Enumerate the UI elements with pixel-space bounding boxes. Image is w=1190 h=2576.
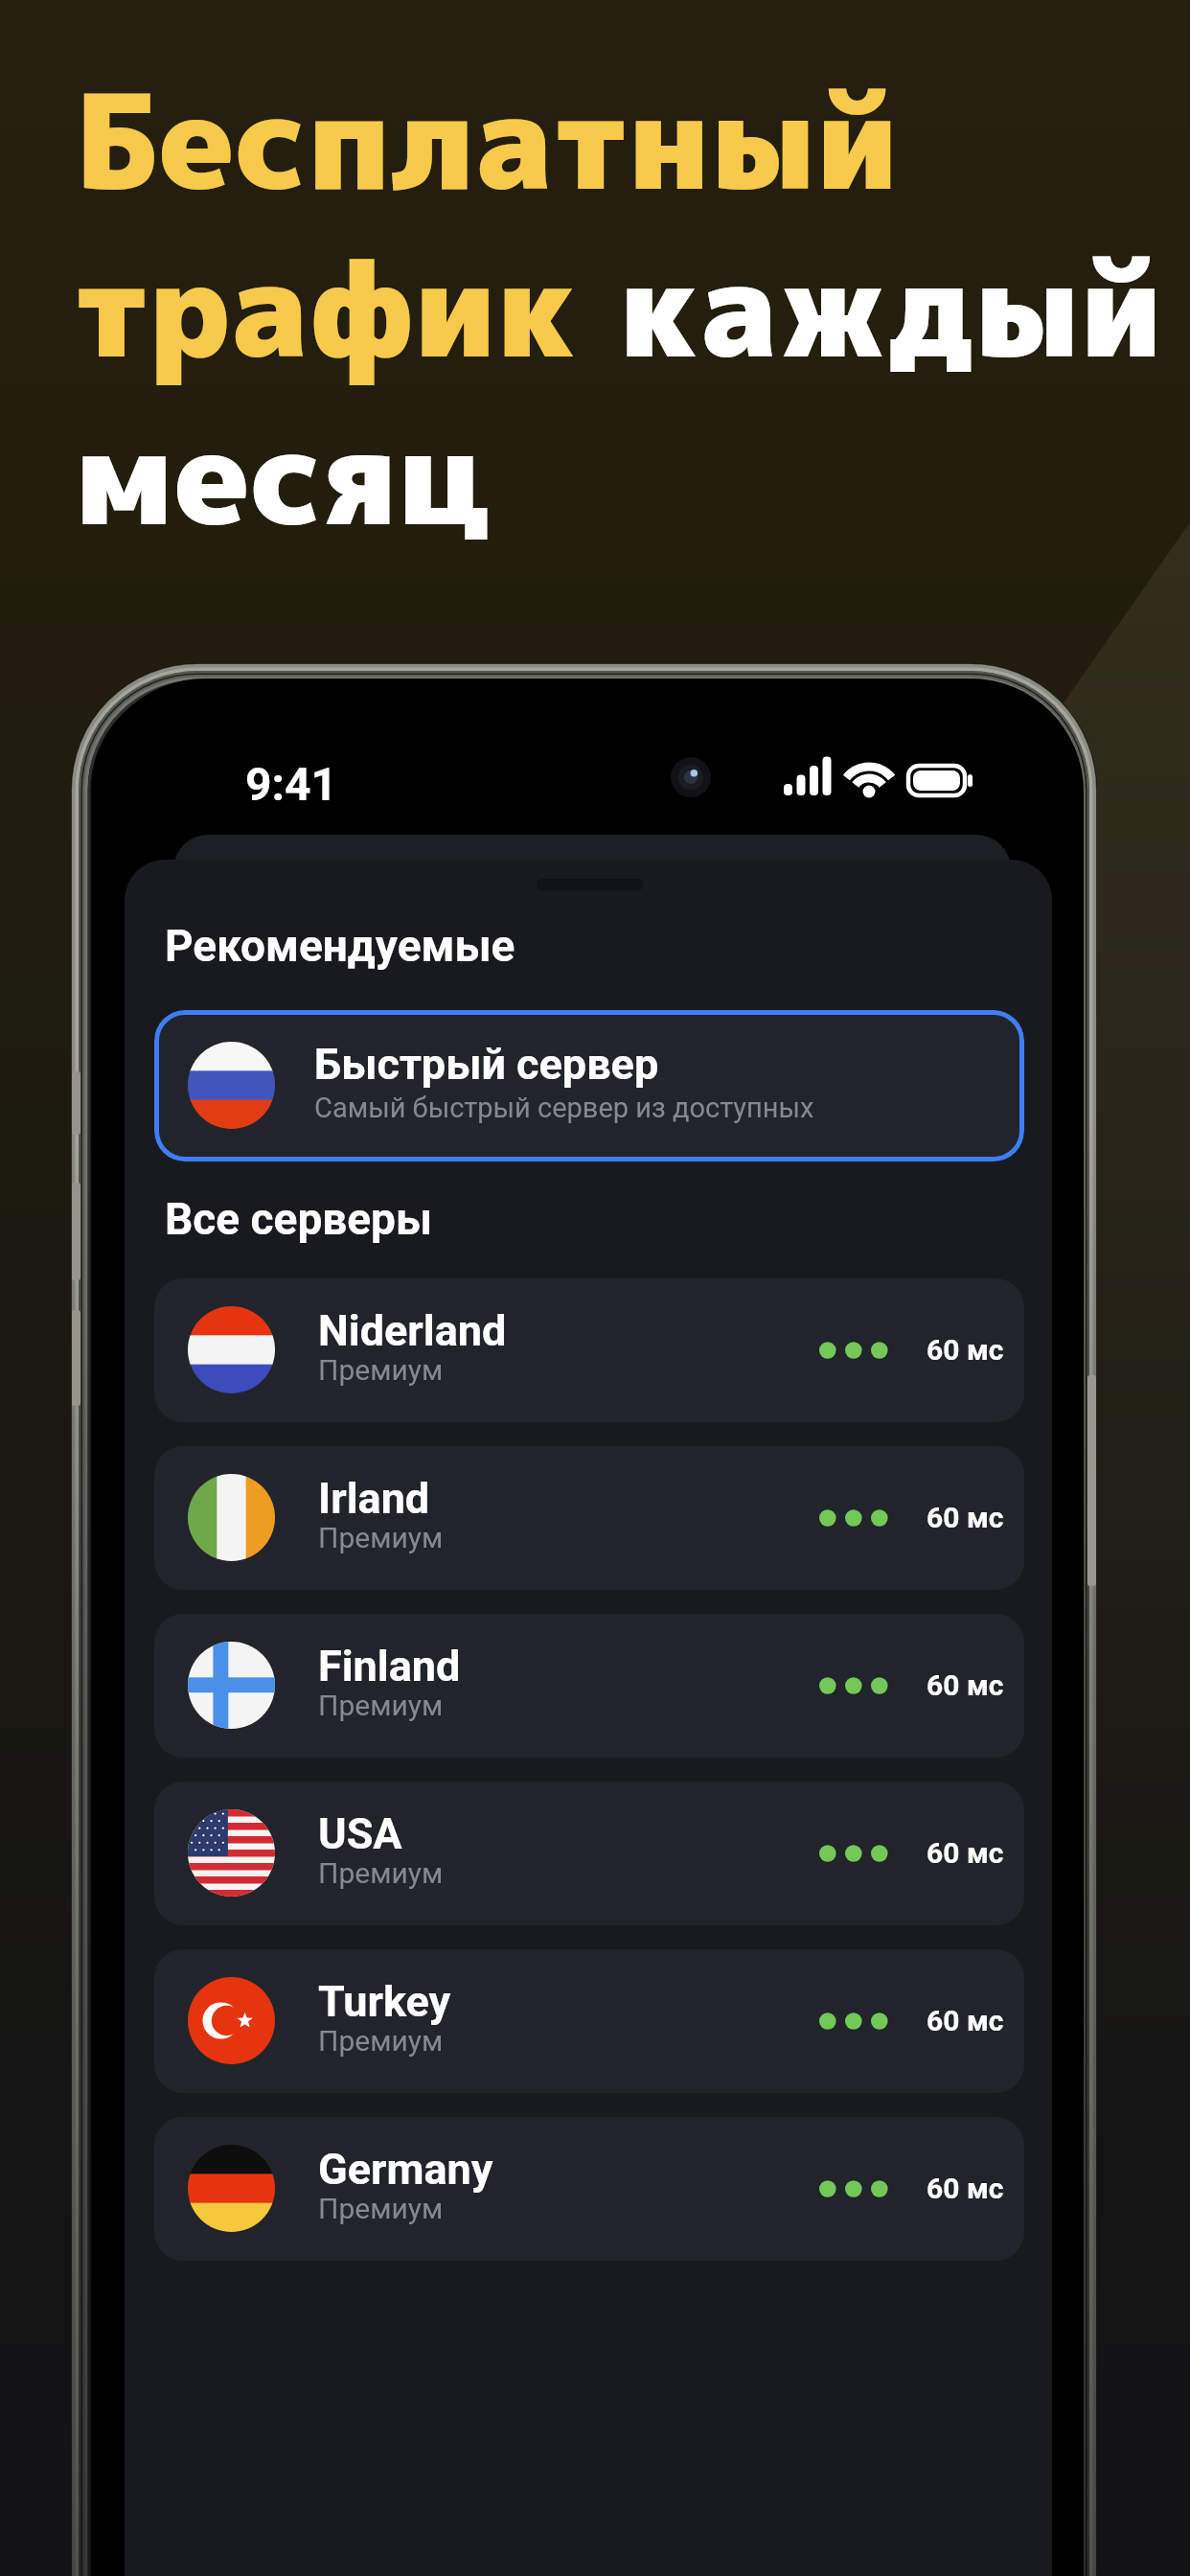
staticText: Finland [318,1641,461,1691]
button[interactable]: Быстрый сервер [154,1010,1024,1161]
button[interactable]: Niderland [154,1278,1024,1422]
staticText: Премиум [318,1856,444,1890]
staticText: Быстрый сервер [314,1039,659,1090]
button[interactable]: Irland [154,1446,1024,1590]
staticText: 60 мс [927,2004,1004,2037]
button[interactable]: USA [154,1782,1024,1925]
staticText: Germany [318,2144,493,2195]
staticText: месяц [75,385,491,565]
staticText: Все серверы [165,1193,433,1245]
staticText: USA [318,1808,402,1859]
staticText: Самый быстрый сервер из доступных [314,1092,814,1124]
staticText: Irland [318,1473,430,1524]
staticText: трафик [75,218,619,398]
staticText: Премиум [318,1353,444,1387]
button[interactable]: Turkey [154,1949,1024,2093]
staticText: Рекомендуемые [165,920,515,972]
staticText: Бесплатный [75,50,899,230]
staticText: 60 мс [927,2172,1004,2205]
staticText: Niderland [318,1305,507,1356]
staticText: 60 мс [927,1501,1004,1534]
staticText: Премиум [318,2024,444,2058]
button[interactable]: Germany [154,2117,1024,2261]
staticText: 60 мс [927,1333,1004,1367]
staticText: 60 мс [927,1836,1004,1870]
staticText: каждый [619,218,1163,398]
staticText: 60 мс [927,1668,1004,1702]
button[interactable]: Finland [154,1614,1024,1758]
staticText: Turkey [318,1976,451,2027]
staticText: 9:41 [245,757,338,811]
staticText: Премиум [318,2192,444,2225]
staticText: Премиум [318,1521,444,1554]
staticText: Премиум [318,1689,444,1722]
